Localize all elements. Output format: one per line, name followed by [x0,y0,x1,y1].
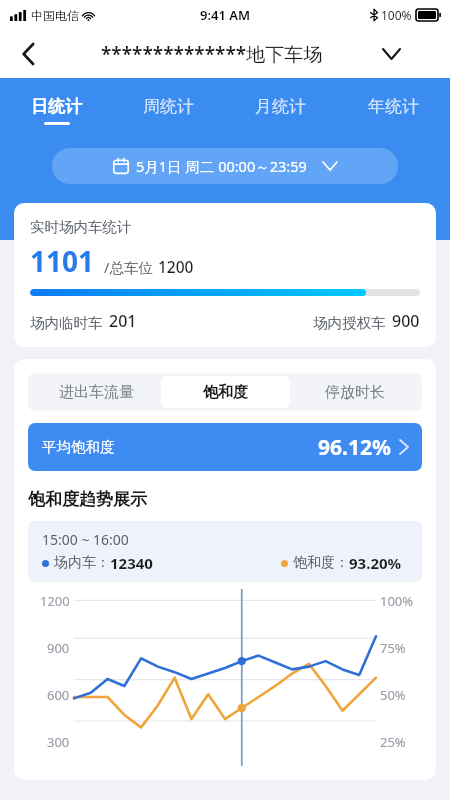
staticText: 75% [380,639,406,657]
staticText: 5月1日 周二 00:00～23:59 [136,156,307,176]
staticText: 201 [109,310,137,332]
staticText: 1200 [40,592,70,610]
button[interactable]: 停放时长 [290,376,419,408]
button[interactable]: Expand [374,37,408,71]
button[interactable]: 实时场内车统计 [14,203,436,347]
button[interactable]: 5月1日 周二 00:00～23:59 [52,148,398,184]
staticText: 平均饱和度 [42,438,115,456]
staticText: 100% [380,592,414,610]
staticText: /总车位 [104,257,153,277]
button[interactable]: 进出车流量 [31,376,161,408]
staticText: 93.20% [349,553,402,573]
staticText: 15:00 ~ 16:00 [42,530,129,549]
staticText: 场内临时车 [30,314,103,332]
staticText: 饱和度 [203,383,248,402]
staticText: 周统计 [143,96,194,117]
staticText: 1101 [30,242,95,280]
staticText: 实时场内车统计 [30,218,132,236]
staticText: 600 [47,686,70,704]
staticText: 中国电信 [31,8,79,23]
button[interactable]: 日统计 [0,88,112,132]
button[interactable]: 月统计 [224,88,337,132]
staticText: 100% [381,7,412,23]
button[interactable]: Back [6,32,50,76]
staticText: 300 [47,733,70,751]
staticText: 9:41 AM [200,6,251,24]
staticText: 进出车流量 [59,383,134,402]
staticText: 停放时长 [325,383,385,402]
staticText: 900 [392,310,420,332]
staticText: 饱和度趋势展示 [28,489,147,510]
button[interactable]: 平均饱和度 [28,423,422,471]
staticText: 50% [380,686,406,704]
staticText: 96.12% [318,433,391,462]
staticText: 饱和度： [293,554,349,572]
button[interactable]: 饱和度 [161,376,290,408]
staticText: 12340 [110,553,153,573]
staticText: 场内车： [54,554,110,572]
staticText: **************地下车场 [101,41,323,67]
staticText: 900 [47,639,70,657]
staticText: 日统计 [31,96,82,117]
button[interactable]: 年统计 [337,88,450,132]
staticText: 1200 [158,256,194,277]
staticText: 25% [380,733,406,751]
staticText: 年统计 [368,96,419,117]
button[interactable]: 周统计 [112,88,224,132]
staticText: 月统计 [255,96,306,117]
staticText: 场内授权车 [313,314,386,332]
